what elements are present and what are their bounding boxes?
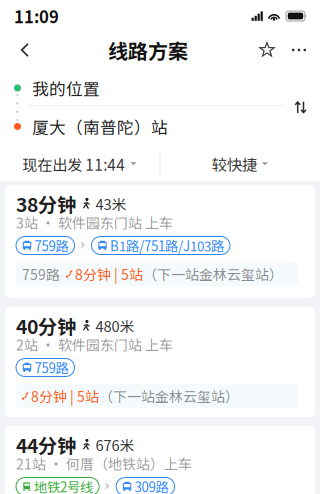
staticText: 480米 [95, 315, 134, 336]
button[interactable]: 44分钟 [5, 426, 315, 494]
staticText: 676米 [95, 434, 134, 455]
staticText: 8分钟 | 5站 [75, 264, 143, 284]
staticText: （下一站金林云玺站） [99, 386, 239, 406]
staticText: 线路方案 [108, 35, 188, 64]
staticText: 8分钟 | 5站 [31, 386, 99, 406]
staticText: 44分钟 [16, 430, 76, 458]
staticText: （下一站金林云玺站） [143, 264, 283, 284]
button[interactable]: 38分钟 [5, 185, 315, 298]
button[interactable]: 较快捷 [160, 147, 320, 181]
staticText: 地铁2号线 [34, 477, 93, 494]
staticText: 3站 · 软件园东门站 上车 [16, 212, 173, 233]
staticText: 43米 [95, 193, 126, 214]
button[interactable]: 现在出发 11:44 [0, 147, 159, 181]
staticText: 较快捷 [212, 153, 257, 175]
button[interactable]: 我的位置 [11, 69, 285, 107]
staticText: 现在出发 11:44 [22, 153, 125, 175]
staticText: 309路 [135, 477, 169, 494]
button[interactable]: 40分钟 [5, 307, 315, 417]
staticText: 38分钟 [16, 189, 76, 217]
staticText: 11:09 [14, 4, 59, 28]
button[interactable]: More options [283, 33, 315, 67]
staticText: 759路 [34, 236, 68, 255]
staticText: 2站 · 软件园东门站 上车 [16, 334, 173, 355]
button[interactable]: 厦大（南普陀）站 [11, 107, 285, 146]
staticText: 21站 · 何厝（地铁站）上车 [16, 453, 192, 474]
staticText: 我的位置 [32, 76, 100, 100]
staticText: 759路 [22, 264, 60, 284]
staticText: B1路/751路/J103路 [110, 236, 224, 255]
staticText: 厦大（南普陀）站 [32, 114, 168, 138]
button[interactable]: Back [5, 33, 45, 67]
staticText: 759路 [34, 358, 68, 377]
button[interactable]: Swap start and destination [285, 68, 317, 147]
staticText: 40分钟 [16, 311, 76, 339]
button[interactable]: Favourite [251, 33, 283, 67]
